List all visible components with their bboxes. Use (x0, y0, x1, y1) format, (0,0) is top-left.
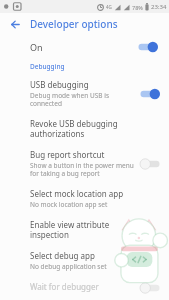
button[interactable]: Toggle off (139, 157, 161, 171)
staticText: Revoke USB debugging authorizations (30, 118, 161, 139)
staticText: Enable view attribute inspection (30, 219, 110, 240)
staticText: 78% (132, 4, 143, 11)
staticText: Developer options (30, 17, 118, 31)
staticText: Show a button in the power menu for taki… (30, 161, 134, 178)
button[interactable]: Select mock location app (0, 183, 169, 214)
staticText: Debugging (30, 62, 65, 71)
staticText: Wait for debugger (30, 281, 99, 292)
button[interactable]: Enable view attribute inspection (0, 214, 169, 245)
staticText: Debug mode when USB is connected (30, 91, 110, 108)
button[interactable]: Toggle on (137, 40, 159, 54)
button[interactable]: Bug report shortcut (0, 144, 169, 183)
button[interactable]: On (0, 35, 169, 59)
button[interactable]: Toggle on (139, 87, 161, 101)
button[interactable]: Select debug app (0, 245, 169, 276)
staticText: Bug report shortcut (30, 149, 105, 160)
button[interactable]: Wait for debugger (0, 276, 169, 300)
staticText: Select debug app (30, 250, 95, 261)
staticText: 4G (106, 4, 112, 10)
staticText: No mock location app set (30, 200, 108, 209)
staticText: On (30, 41, 43, 53)
button[interactable]: Back (6, 15, 24, 33)
staticText: 23:34 (151, 3, 167, 11)
staticText: USB debugging (30, 79, 89, 90)
staticText: No debug application set (30, 262, 107, 271)
button[interactable]: USB debugging (0, 74, 169, 113)
button[interactable]: Toggle off (139, 281, 161, 295)
button[interactable]: Revoke USB debugging authorizations (0, 113, 169, 144)
staticText: Select mock location app (30, 188, 124, 199)
